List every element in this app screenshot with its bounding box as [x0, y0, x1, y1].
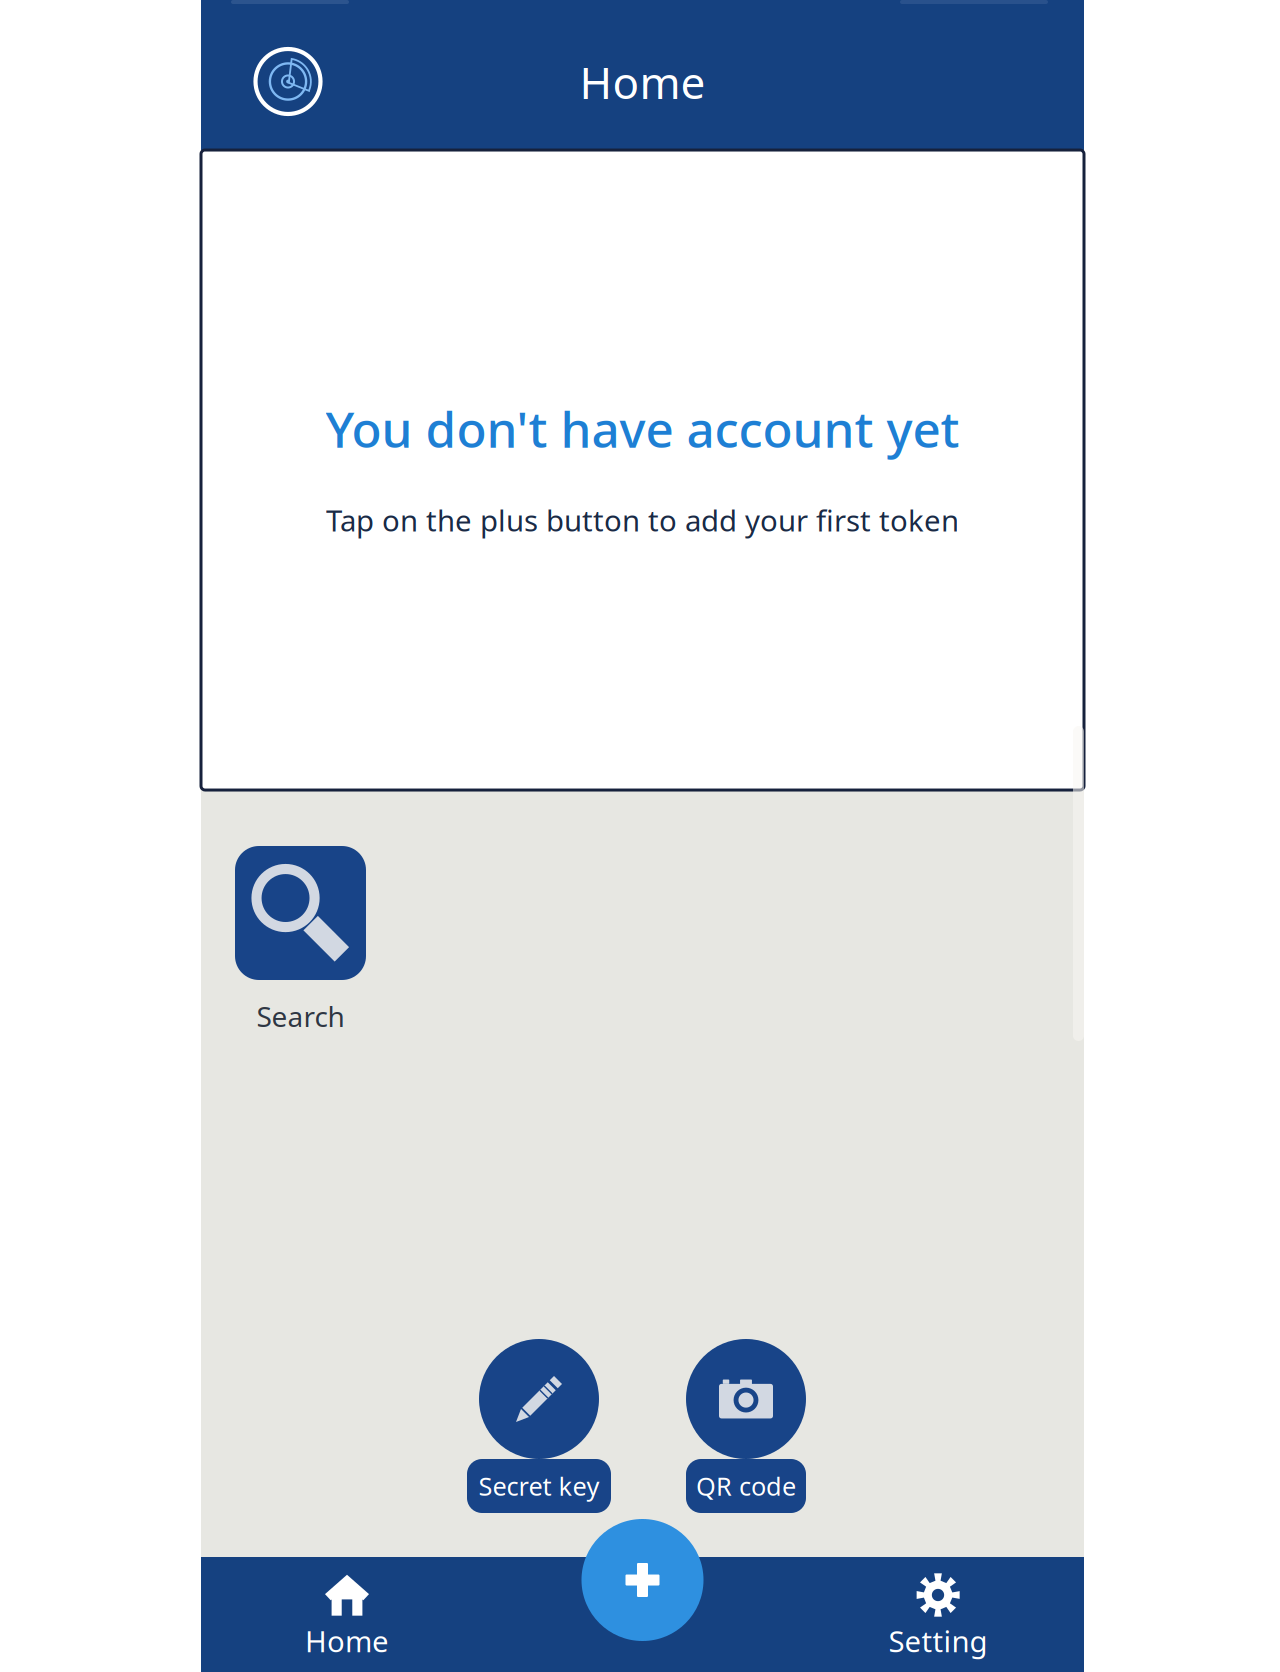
staticText: Home: [579, 52, 705, 112]
staticText: Tap on the plus button to add your first…: [326, 500, 959, 540]
staticText: Secret key: [478, 1469, 599, 1503]
staticText: Search: [256, 997, 344, 1035]
staticText: Home: [305, 1621, 389, 1661]
button[interactable]: QR code: [686, 1459, 806, 1513]
button[interactable]: Setting: [828, 1557, 1048, 1672]
button[interactable]: Add with secret key: [479, 1339, 599, 1459]
staticText: You don't have account yet: [325, 395, 959, 462]
button[interactable]: Scan QR code: [686, 1339, 806, 1459]
staticText: QR code: [696, 1469, 796, 1503]
button[interactable]: Token timer: [238, 25, 338, 125]
button[interactable]: Search: [235, 846, 366, 1035]
button[interactable]: Secret key: [467, 1459, 611, 1513]
staticText: Setting: [888, 1621, 987, 1661]
button[interactable]: Add token: [581, 1519, 703, 1641]
button[interactable]: Home: [237, 1557, 457, 1672]
